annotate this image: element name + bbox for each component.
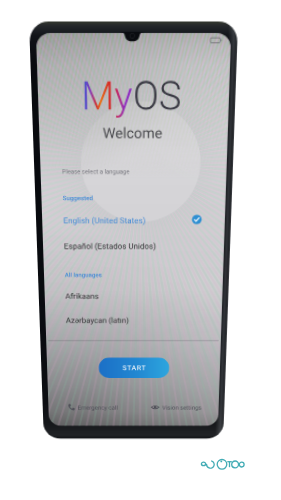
staticText: My (81, 72, 133, 118)
staticText: Español (Estados Unidos) (64, 242, 157, 251)
button[interactable]: Emergency call (66, 401, 128, 416)
staticText: Please select a language (62, 167, 130, 175)
button[interactable]: START (98, 358, 169, 378)
button[interactable] (44, 283, 223, 307)
button[interactable] (42, 205, 225, 231)
staticText: All languages (65, 271, 102, 278)
button[interactable]: Vision settings (150, 401, 208, 416)
staticText: Vision settings (162, 404, 202, 410)
staticText: Welcome (103, 124, 163, 141)
staticText: Afrikaans (65, 292, 100, 301)
staticText: English (United States) (63, 216, 146, 225)
staticText: Suggested (63, 194, 93, 201)
button[interactable] (45, 306, 222, 330)
staticText: Emergency call (77, 404, 118, 410)
button[interactable] (42, 231, 224, 257)
staticText: Azərbaycan (latın) (66, 316, 129, 325)
staticText: START (122, 364, 146, 372)
staticText: OS (133, 72, 182, 118)
